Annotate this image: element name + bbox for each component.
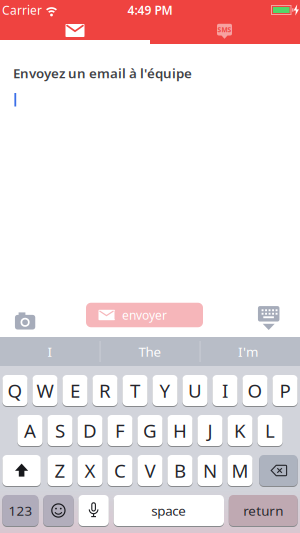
staticText: envoyer [122, 307, 167, 323]
staticText: D [83, 418, 97, 443]
button[interactable]: O [242, 374, 268, 406]
staticText: T [130, 378, 140, 403]
button[interactable] [150, 20, 300, 44]
staticText: L [265, 418, 275, 443]
button[interactable]: Z [47, 454, 73, 486]
staticText: 4:49 PM [127, 2, 172, 18]
button[interactable]: H [167, 414, 193, 446]
staticText: V [144, 458, 155, 483]
button[interactable]: A [17, 414, 43, 446]
staticText: O [247, 378, 262, 403]
staticText: I'm [238, 343, 258, 360]
staticText: SMS [217, 25, 231, 34]
button[interactable]: S [47, 414, 73, 446]
staticText: Envoyez un email à l'équipe [13, 64, 192, 82]
button[interactable]: V [137, 454, 163, 486]
staticText: W [36, 378, 53, 403]
button[interactable] [10, 308, 40, 334]
staticText: A [24, 418, 36, 443]
button[interactable] [43, 494, 74, 526]
button[interactable]: D [77, 414, 103, 446]
button[interactable]: N [197, 454, 223, 486]
button[interactable]: X [77, 454, 103, 486]
button[interactable]: E [62, 374, 88, 406]
staticText: U [188, 378, 202, 403]
staticText: space [151, 502, 186, 519]
button[interactable]: Q [2, 374, 28, 406]
button[interactable] [2, 454, 41, 486]
button[interactable]: The [101, 337, 199, 365]
staticText: X [84, 458, 95, 483]
button[interactable]: I [212, 374, 238, 406]
staticText: C [114, 458, 126, 483]
button[interactable]: 123 [2, 494, 38, 526]
button[interactable]: G [137, 414, 163, 446]
staticText: M [231, 458, 248, 483]
button[interactable]: M [227, 454, 253, 486]
staticText: return [243, 502, 283, 519]
button[interactable]: L [257, 414, 283, 446]
button[interactable] [0, 20, 150, 44]
button[interactable] [78, 494, 109, 526]
button[interactable]: U [182, 374, 208, 406]
staticText: H [173, 418, 187, 443]
button[interactable]: B [167, 454, 193, 486]
staticText: K [234, 418, 246, 443]
staticText: S [55, 418, 65, 443]
button[interactable]: W [32, 374, 58, 406]
button[interactable]: I'm [199, 337, 297, 365]
staticText: Q [7, 378, 22, 403]
button[interactable]: J [197, 414, 223, 446]
staticText: P [279, 378, 290, 403]
staticText: B [174, 458, 186, 483]
button[interactable]: P [272, 374, 298, 406]
button[interactable]: K [227, 414, 253, 446]
button[interactable]: F [107, 414, 133, 446]
staticText: E [70, 378, 80, 403]
staticText: G [143, 418, 157, 443]
button[interactable]: space [114, 494, 224, 526]
button[interactable] [255, 304, 281, 332]
staticText: F [115, 418, 125, 443]
button[interactable] [259, 454, 298, 486]
button[interactable]: return [229, 494, 298, 526]
staticText: I [47, 343, 52, 360]
staticText: 123 [8, 502, 32, 519]
staticText: N [203, 458, 217, 483]
staticText: J [207, 418, 212, 443]
staticText: The [138, 343, 161, 360]
button[interactable]: envoyer [86, 303, 203, 327]
button[interactable]: Y [152, 374, 178, 406]
button[interactable]: I [1, 337, 99, 365]
staticText: R [99, 378, 111, 403]
staticText: Carrier [2, 2, 42, 18]
staticText: Z [54, 458, 65, 483]
staticText: Y [159, 378, 170, 403]
button[interactable]: R [92, 374, 118, 406]
button[interactable]: T [122, 374, 148, 406]
button[interactable]: C [107, 454, 133, 486]
staticText: I [222, 378, 228, 403]
